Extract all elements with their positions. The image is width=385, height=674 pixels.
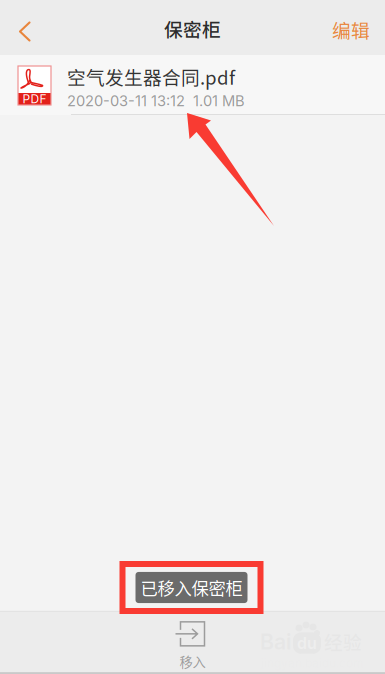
staticText: PDF	[22, 92, 46, 106]
button[interactable]: 返回	[0, 0, 55, 55]
staticText: 移入	[179, 652, 205, 671]
staticText: 已移入保密柜	[140, 575, 242, 600]
staticText: 空气发生器合同.pdf	[67, 63, 235, 90]
staticText: 保密柜	[164, 15, 221, 42]
button[interactable]: 移入	[0, 612, 385, 672]
staticText: 2020-03-11 13:12 1.01 MB	[67, 92, 245, 110]
button[interactable]: PDF	[0, 55, 385, 115]
button[interactable]: 编辑	[308, 0, 385, 59]
staticText: 编辑	[332, 16, 370, 43]
